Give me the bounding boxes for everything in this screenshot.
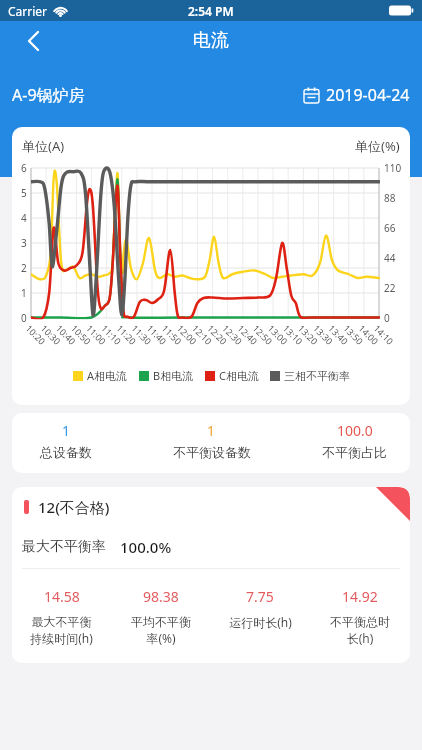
- staticText: C相电流: [219, 368, 259, 383]
- button[interactable]: 100.0: [288, 421, 410, 460]
- staticText: 2:54 PM: [188, 3, 234, 19]
- staticText: 不平衡设备数: [173, 444, 251, 460]
- staticText: 三相不平衡率: [284, 369, 350, 383]
- staticText: 平均不平衡 率(%): [131, 614, 191, 647]
- staticText: 最大不平衡率: [22, 538, 106, 556]
- button[interactable]: 2019-04-24: [303, 84, 410, 106]
- staticText: 最大不平衡 持续时间(h): [30, 614, 93, 647]
- staticText: 2019-04-24: [326, 84, 410, 106]
- staticText: 运行时长(h): [229, 614, 292, 630]
- staticText: 1: [62, 421, 71, 440]
- button[interactable]: 1: [12, 421, 132, 460]
- staticText: 14.92: [342, 587, 378, 606]
- staticText: 单位(%): [355, 137, 400, 155]
- button[interactable]: 14.92: [310, 587, 410, 647]
- staticText: Carrier: [8, 3, 48, 19]
- staticText: 不平衡占比: [322, 444, 387, 460]
- button[interactable]: 7.75: [210, 587, 310, 630]
- button[interactable]: 98.38: [111, 587, 210, 647]
- staticText: 100.0: [337, 421, 373, 440]
- staticText: A相电流: [87, 368, 128, 383]
- staticText: 98.38: [143, 587, 179, 606]
- staticText: 电流: [193, 29, 229, 52]
- staticText: B相电流: [153, 368, 194, 383]
- staticText: 12(不合格): [38, 497, 110, 517]
- staticText: 不平衡总时 长(h): [330, 614, 390, 647]
- staticText: A-9锅炉房: [12, 84, 85, 106]
- staticText: 100.0%: [120, 537, 172, 557]
- staticText: 总设备数: [40, 444, 92, 460]
- staticText: 单位(A): [22, 137, 65, 155]
- button[interactable]: 14.58: [12, 587, 111, 647]
- staticText: 7.75: [246, 587, 274, 606]
- staticText: 14.58: [44, 587, 80, 606]
- button[interactable]: [28, 31, 39, 51]
- staticText: 1: [207, 421, 216, 440]
- button[interactable]: 1: [145, 421, 278, 460]
